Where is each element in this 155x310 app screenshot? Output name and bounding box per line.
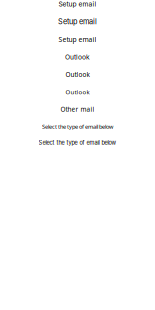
staticText: Other mail	[60, 105, 94, 114]
staticText: Select the type of email below	[42, 123, 113, 130]
staticText: Setup email	[58, 17, 97, 26]
staticText: Outlook	[65, 88, 89, 96]
staticText: Setup email	[58, 0, 96, 8]
staticText: Select the type of email below	[38, 139, 116, 146]
staticText: Outlook	[65, 70, 89, 79]
staticText: Outlook	[65, 53, 90, 61]
staticText: Setup email	[58, 35, 96, 44]
